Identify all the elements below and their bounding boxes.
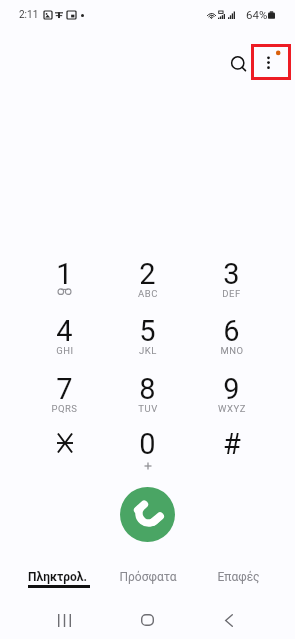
button[interactable]: Recent apps [44,600,84,639]
staticText: 4 [56,314,73,348]
button[interactable]: 0 [106,421,189,473]
staticText: PQRS [51,403,78,414]
staticText: 0 [139,427,156,461]
staticText: TUV [138,403,158,414]
staticText: 2 [139,257,156,291]
button[interactable]: 6 [190,308,273,360]
button[interactable]: 3 [190,251,273,303]
staticText: 64% [246,8,268,21]
staticText: JKL [139,345,157,356]
button[interactable]: Back [209,600,249,639]
staticText: ABC [138,288,158,299]
staticText: Πρόσφατα [119,570,177,584]
staticText: Πληκτρολ. [28,570,87,584]
staticText: 7 [56,372,73,406]
staticText: DEF [222,288,241,299]
staticText: 8 [139,372,156,406]
staticText: 3 [223,257,240,291]
staticText: 9 [223,372,240,406]
button[interactable]: Επαφές [193,564,283,594]
staticText: 6 [223,314,240,348]
button[interactable]: 7 [23,366,106,418]
button[interactable]: 2 [106,251,189,303]
staticText: MNO [220,345,244,356]
button[interactable]: 4 [23,308,106,360]
staticText: 5 [139,314,156,348]
button[interactable]: 8 [106,366,189,418]
staticText: 1 [56,257,73,291]
button[interactable]: Πρόσφατα [103,564,193,594]
staticText: Επαφές [217,570,260,584]
button[interactable]: # [190,421,273,473]
staticText: GHI [56,345,74,356]
button[interactable]: Call [120,487,175,542]
button[interactable]: More options [252,45,290,79]
button[interactable]: 5 [106,308,189,360]
button[interactable]: 9 [190,366,273,418]
button[interactable]: Πληκτρολ. [12,564,102,594]
staticText: WXYZ [218,403,246,414]
staticText: # [223,427,241,461]
button[interactable]: 1 [23,251,106,303]
button[interactable]: Search [223,49,255,81]
button[interactable] [23,421,106,473]
staticText: 2:11 [19,9,39,21]
button[interactable]: Home [127,600,167,639]
